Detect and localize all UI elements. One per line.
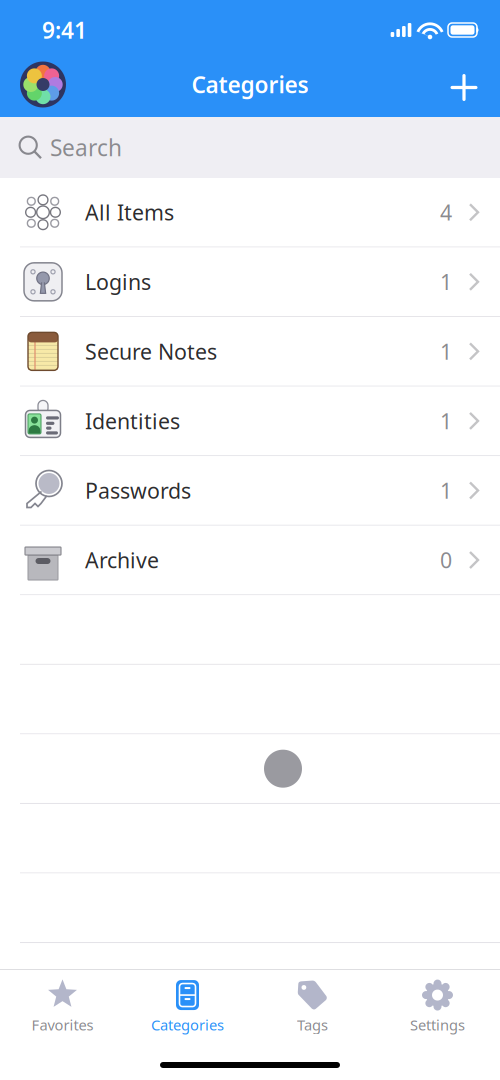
staticText: 1 <box>440 268 452 296</box>
staticText: Tags <box>297 1015 328 1035</box>
button[interactable]: Tags <box>250 970 375 1040</box>
staticText: 1 <box>440 407 452 435</box>
button[interactable]: Account <box>20 61 66 107</box>
staticText: Secure Notes <box>85 337 217 365</box>
button[interactable]: Secure Notes <box>0 317 500 387</box>
staticText: Categories <box>151 1015 224 1035</box>
button[interactable]: Identities <box>0 387 500 456</box>
button[interactable]: Archive <box>0 526 500 595</box>
staticText: 0 <box>440 546 452 574</box>
button[interactable]: Passwords <box>0 456 500 526</box>
staticText: Passwords <box>85 476 191 505</box>
staticText: Archive <box>85 546 159 574</box>
staticText: Logins <box>85 268 151 296</box>
button[interactable]: All Items <box>0 178 500 247</box>
staticText: 4 <box>440 198 452 226</box>
staticText: Settings <box>410 1015 465 1035</box>
staticText: 1 <box>440 476 452 505</box>
staticText: Categories <box>191 69 308 99</box>
button[interactable]: Settings <box>375 970 500 1040</box>
staticText: All Items <box>85 198 174 226</box>
staticText: 9:41 <box>42 15 87 45</box>
button[interactable]: Favorites <box>0 970 125 1040</box>
button[interactable]: Logins <box>0 248 500 317</box>
button[interactable]: Add <box>446 67 480 101</box>
button[interactable]: Search <box>0 117 500 178</box>
staticText: Identities <box>85 407 180 435</box>
staticText: 1 <box>440 337 452 365</box>
button[interactable]: Categories <box>125 970 250 1040</box>
staticText: Search <box>50 132 122 162</box>
staticText: Favorites <box>31 1015 93 1035</box>
